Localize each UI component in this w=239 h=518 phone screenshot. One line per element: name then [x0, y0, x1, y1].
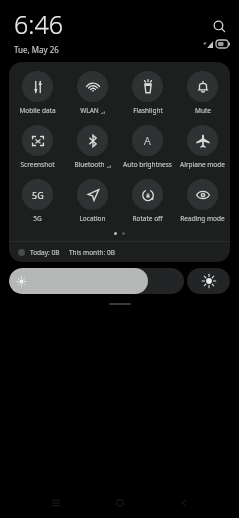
button[interactable]: [109, 303, 131, 305]
staticText: Screenshot: [20, 160, 55, 169]
staticText: Bluetooth: [74, 160, 105, 169]
button[interactable]: Recents: [39, 488, 73, 518]
staticText: Today: 0B: [30, 248, 60, 257]
button[interactable]: WLAN: [65, 71, 120, 115]
staticText: Auto brightness: [123, 160, 172, 169]
staticText: Flashlight: [133, 106, 163, 115]
staticText: This month: 0B: [69, 248, 115, 257]
button[interactable]: Search: [209, 16, 229, 36]
button[interactable]: A: [120, 125, 175, 169]
button[interactable]: 5G: [9, 179, 65, 223]
staticText: A: [144, 133, 151, 148]
button[interactable]: Bluetooth: [65, 125, 120, 169]
staticText: Mobile data: [19, 106, 56, 115]
button[interactable]: Brightness: [9, 268, 184, 294]
button[interactable]: Home: [103, 488, 137, 518]
button[interactable]: Location: [65, 179, 120, 223]
button[interactable]: Rotate off: [120, 179, 175, 223]
staticText: 5G: [33, 214, 42, 223]
staticText: 6:46: [14, 7, 63, 41]
staticText: Airplane mode: [180, 160, 225, 169]
button[interactable]: Mobile data: [9, 71, 65, 115]
button[interactable]: Flashlight: [120, 71, 175, 115]
staticText: Tue, May 26: [14, 44, 59, 55]
staticText: Reading mode: [180, 214, 225, 223]
staticText: Rotate off: [132, 214, 163, 223]
button[interactable]: Airplane mode: [175, 125, 230, 169]
button[interactable]: Today: 0B: [9, 242, 230, 262]
staticText: Mute: [195, 106, 211, 115]
button[interactable]: Mute: [175, 71, 230, 115]
button[interactable]: Reading mode: [175, 179, 230, 223]
staticText: 5G: [32, 189, 44, 201]
staticText: Location: [79, 214, 106, 223]
staticText: WLAN: [80, 106, 99, 115]
button[interactable]: Brightness settings: [187, 268, 230, 294]
button[interactable]: Screenshot: [9, 125, 65, 169]
